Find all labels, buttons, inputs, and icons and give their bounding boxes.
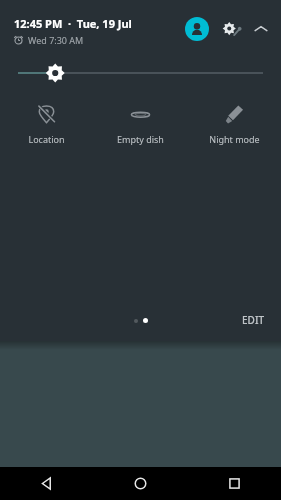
staticText: Wed 7:30 AM xyxy=(28,34,84,46)
button[interactable]: Collapse xyxy=(249,17,273,41)
staticText: EDIT xyxy=(242,313,265,327)
button[interactable]: Location xyxy=(0,102,93,150)
button[interactable]: Home xyxy=(93,467,187,500)
button[interactable]: Night mode xyxy=(187,102,281,150)
button[interactable]: Brightness xyxy=(18,60,263,86)
button[interactable]: Back xyxy=(0,467,93,500)
button[interactable]: Empty dish xyxy=(93,102,187,150)
staticText: Location xyxy=(28,133,65,145)
staticText: 12:45 PM · Tue, 19 Jul xyxy=(14,16,132,31)
button[interactable]: EDIT xyxy=(236,309,271,331)
button[interactable]: User account xyxy=(185,17,209,41)
button[interactable]: Recents xyxy=(187,467,281,500)
button[interactable]: Settings xyxy=(219,17,243,41)
staticText: Empty dish xyxy=(117,133,164,145)
staticText: Night mode xyxy=(209,133,260,145)
